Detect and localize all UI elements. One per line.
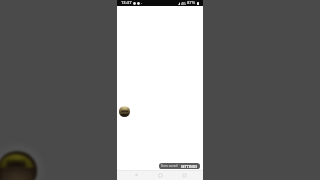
button[interactable]: Home bbox=[155, 170, 165, 180]
staticText: SETTINGS bbox=[181, 164, 198, 169]
button[interactable]: Profile photo bbox=[119, 106, 130, 117]
staticText: 87% bbox=[187, 0, 196, 6]
button[interactable]: Recents bbox=[179, 170, 189, 180]
button[interactable]: Back bbox=[131, 170, 141, 180]
staticText: 4G bbox=[181, 1, 186, 6]
staticText: Item saved bbox=[161, 164, 178, 168]
staticText: 13:37 bbox=[121, 0, 132, 6]
button[interactable]: Item saved bbox=[159, 163, 200, 169]
